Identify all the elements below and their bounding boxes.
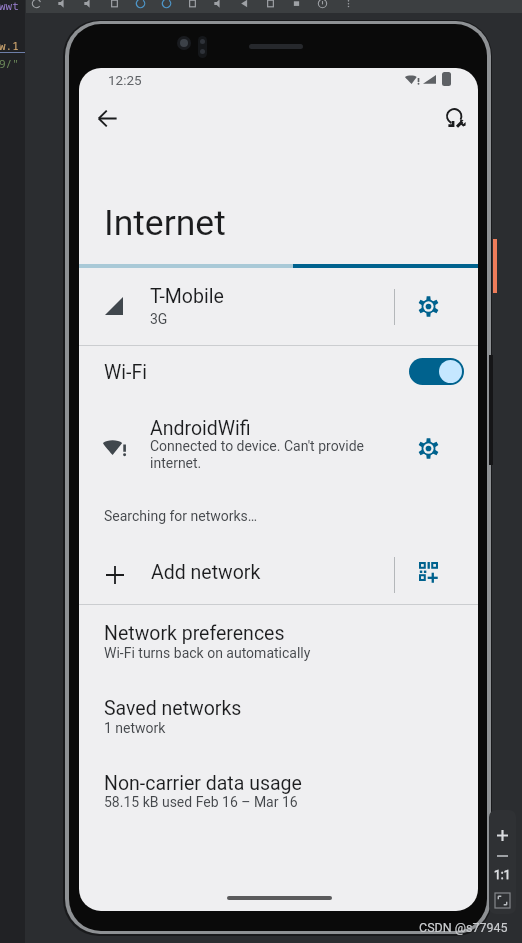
staticText: w.1 — [0, 38, 19, 53]
staticText: Connected to device. Can't provide inter… — [150, 438, 368, 472]
staticText: AndroidWifi — [150, 417, 251, 440]
staticText: 58.15 kB used Feb 16 – Mar 16 — [104, 794, 298, 810]
staticText: Internet — [104, 202, 226, 244]
staticText: Network preferences — [104, 622, 285, 645]
button[interactable]: Non-carrier data usage — [79, 763, 478, 838]
button[interactable]: Back — [91, 102, 123, 134]
staticText: T-Mobile — [150, 285, 224, 308]
staticText: 1 network — [104, 720, 166, 736]
button[interactable]: Network preferences — [79, 613, 478, 688]
staticText: 12:25 — [108, 72, 142, 88]
staticText: Wi-Fi — [104, 361, 147, 384]
button[interactable]: Wi-Fi — [79, 346, 478, 400]
staticText: Searching for networks… — [104, 508, 258, 524]
staticText: 3G — [150, 311, 168, 327]
button[interactable]: T-Mobile — [79, 268, 478, 345]
staticText: Saved networks — [104, 697, 242, 720]
staticText: Non-carrier data usage — [104, 772, 302, 795]
staticText: Add network — [151, 561, 261, 584]
button[interactable]: Saved networks — [79, 688, 478, 763]
button[interactable]: Carrier settings — [392, 268, 464, 345]
button[interactable]: Add network — [79, 545, 478, 604]
staticText: Wi-Fi turns back on automatically — [104, 645, 311, 661]
button[interactable]: Reset options — [440, 102, 472, 134]
button[interactable]: Scan QR code — [392, 545, 464, 604]
button[interactable]: Network settings — [392, 400, 464, 497]
staticText: 1:1 — [494, 868, 511, 882]
button[interactable]: AndroidWifi — [79, 400, 478, 497]
staticText: 9/" — [0, 56, 19, 71]
staticText: wwt — [0, 0, 19, 13]
staticText: CSDN @s77945 — [419, 920, 508, 935]
